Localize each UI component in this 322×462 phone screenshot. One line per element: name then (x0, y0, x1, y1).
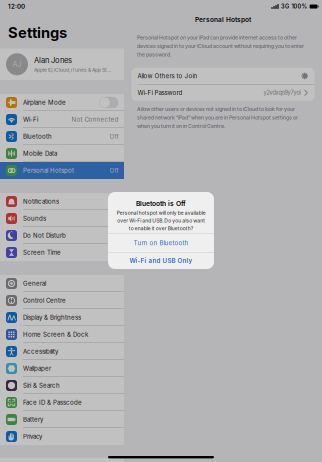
button[interactable]: Privacy (0, 428, 124, 445)
staticText: Sounds (23, 215, 46, 222)
staticText: Personal Hotspot on your iPad can provid… (137, 34, 304, 58)
staticText: Wallpaper (23, 365, 51, 372)
staticText: Battery (23, 416, 43, 423)
button[interactable]: AJ (0, 48, 124, 80)
staticText: 12:00 (8, 3, 25, 10)
staticText: General (23, 280, 46, 287)
button[interactable]: Do Not Disturb (0, 227, 124, 244)
button[interactable]: Bluetooth (0, 128, 124, 145)
button[interactable]: Airplane Mode (0, 94, 124, 111)
staticText: Turn on Bluetooth (133, 239, 188, 247)
staticText: Notifications (23, 198, 59, 205)
staticText: Allow Others to Join (137, 72, 197, 80)
staticText: Settings (8, 24, 67, 42)
button[interactable]: Wi-Fi Password (131, 85, 314, 101)
staticText: Siri & Search (23, 382, 60, 389)
staticText: Off (109, 133, 118, 140)
staticText: Off (109, 167, 118, 174)
button[interactable]: Accessibility (0, 343, 124, 360)
button[interactable]: Display & Brightness (0, 309, 124, 326)
button[interactable]: Wi-Fi and USB Only (108, 252, 214, 269)
button[interactable]: Personal Hotspot (0, 162, 124, 179)
staticText: Personal Hotspot (23, 167, 74, 174)
staticText: Control Centre (23, 297, 66, 304)
staticText: Wi-Fi (23, 116, 38, 123)
staticText: 3G (281, 3, 289, 10)
staticText: Accessibility (23, 348, 58, 355)
staticText: Bluetooth is Off (136, 199, 186, 208)
button[interactable]: Home Screen & Dock (0, 326, 124, 343)
button[interactable]: Battery (0, 411, 124, 428)
button[interactable]: General (0, 275, 124, 292)
staticText: Privacy (23, 433, 42, 440)
button[interactable]: Wi-Fi (0, 111, 124, 128)
staticText: Personal Hotspot (195, 15, 251, 23)
button[interactable]: Screen Time (0, 244, 124, 261)
staticText: Mobile Data (23, 150, 57, 157)
staticText: Wi-Fi and USB Only (129, 257, 192, 264)
button[interactable]: Mobile Data (0, 145, 124, 162)
staticText: Not Connected (71, 116, 118, 123)
staticText: Screen Time (23, 249, 61, 256)
button[interactable]: Control Centre (0, 292, 124, 309)
button[interactable]: Turn on Bluetooth (108, 234, 214, 252)
staticText: Wi-Fi Password (137, 89, 182, 96)
staticText: Bluetooth (23, 133, 52, 140)
staticText: Home Screen & Dock (23, 331, 88, 338)
button[interactable]: Siri & Search (0, 377, 124, 394)
button[interactable]: Notifications (0, 193, 124, 210)
staticText: Display & Brightness (23, 314, 81, 321)
button[interactable]: Face ID & Passcode (0, 394, 124, 411)
staticText: Do Not Disturb (23, 232, 66, 239)
staticText: Face ID & Passcode (23, 399, 82, 406)
button[interactable]: Sounds (0, 210, 124, 227)
staticText: y2vdxqo9y7yoi (263, 89, 300, 96)
staticText: Alan Jones (34, 56, 72, 65)
staticText: Apple ID, iCloud, iTunes & App St… (34, 67, 111, 73)
staticText: Airplane Mode (23, 99, 66, 106)
staticText: Personal hotspot will only be available … (116, 210, 205, 231)
staticText: 100% (292, 3, 308, 10)
staticText: Allow other users or devices not signed … (137, 106, 298, 129)
staticText: AJ (12, 60, 21, 69)
button[interactable]: Allow Others to Join (131, 68, 314, 84)
button[interactable]: Wallpaper (0, 360, 124, 377)
